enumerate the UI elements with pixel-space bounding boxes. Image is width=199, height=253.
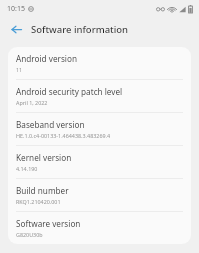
staticText: Android security patch level [16, 86, 123, 97]
button[interactable]: Software version [8, 212, 191, 244]
staticText: HE.1.0.c4-00133-1.464438.3.483269.4 [16, 132, 111, 139]
staticText: 11 [16, 66, 23, 73]
staticText: Baseband version [16, 119, 85, 130]
button[interactable]: Android version [8, 47, 191, 79]
staticText: Android version [16, 53, 77, 64]
staticText: Build number [16, 185, 69, 196]
button[interactable]: Build number [8, 179, 191, 211]
staticText: RKQ1.210420.001 [16, 198, 61, 205]
staticText: G820U30b [16, 231, 43, 238]
staticText: Software information [31, 23, 129, 36]
button[interactable]: Back [6, 19, 26, 39]
button[interactable]: Android security patch level [8, 80, 191, 112]
button[interactable]: Kernel version [8, 146, 191, 178]
staticText: 10:15 [7, 4, 25, 14]
staticText: April 1, 2022 [16, 99, 48, 106]
button[interactable]: Baseband version [8, 113, 191, 145]
staticText: Software version [16, 218, 81, 229]
staticText: 4.14.190 [16, 165, 38, 172]
staticText: Kernel version [16, 152, 72, 163]
